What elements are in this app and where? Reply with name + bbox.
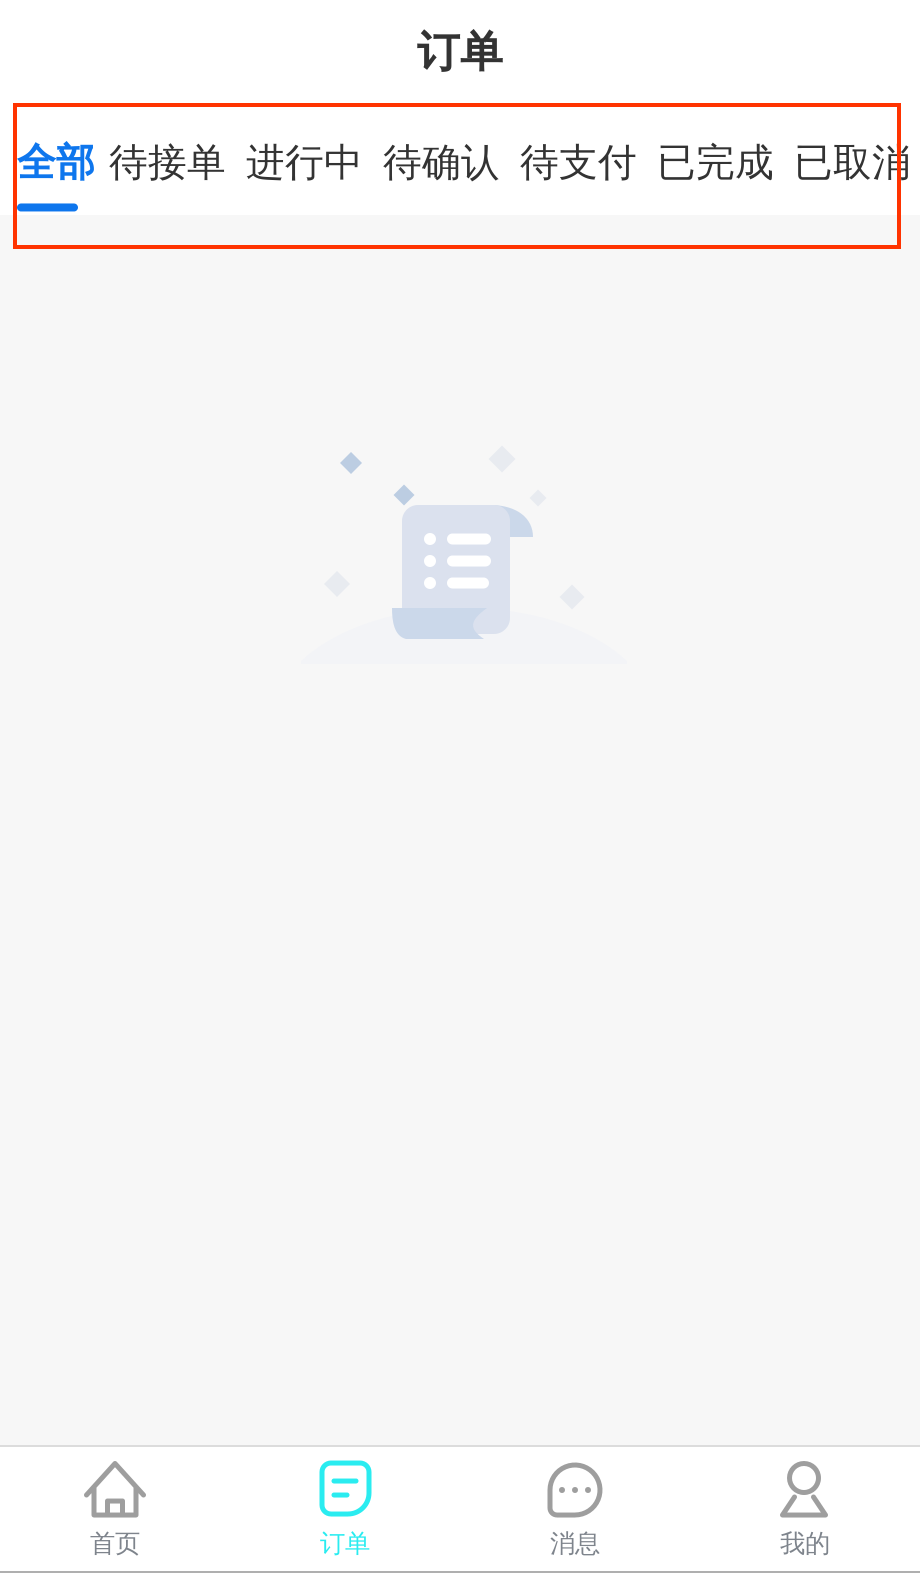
button[interactable]: 订单 <box>230 1447 460 1571</box>
staticText: 消息 <box>550 1528 600 1559</box>
button[interactable]: 已取消 <box>784 139 920 211</box>
staticText: 我的 <box>780 1528 830 1559</box>
staticText: 待接单 <box>109 139 226 186</box>
button[interactable]: 待接单 <box>99 139 236 211</box>
button[interactable]: 首页 <box>0 1447 230 1571</box>
button[interactable]: 消息 <box>460 1447 690 1571</box>
button[interactable]: 进行中 <box>236 139 373 211</box>
staticText: 已完成 <box>657 139 774 186</box>
button[interactable]: 全部 <box>1 139 99 211</box>
staticText: 待确认 <box>383 139 500 186</box>
staticText: 首页 <box>90 1528 140 1559</box>
staticText: 待支付 <box>520 139 637 186</box>
staticText: 订单 <box>417 26 503 78</box>
button[interactable]: 已完成 <box>647 139 784 211</box>
button[interactable]: 待确认 <box>373 139 510 211</box>
staticText: 已取消 <box>794 139 911 186</box>
staticText: 进行中 <box>246 139 363 186</box>
staticText: 订单 <box>320 1528 370 1559</box>
staticText: 全部 <box>17 139 95 186</box>
button[interactable]: 我的 <box>690 1447 920 1571</box>
button[interactable]: 待支付 <box>510 139 647 211</box>
